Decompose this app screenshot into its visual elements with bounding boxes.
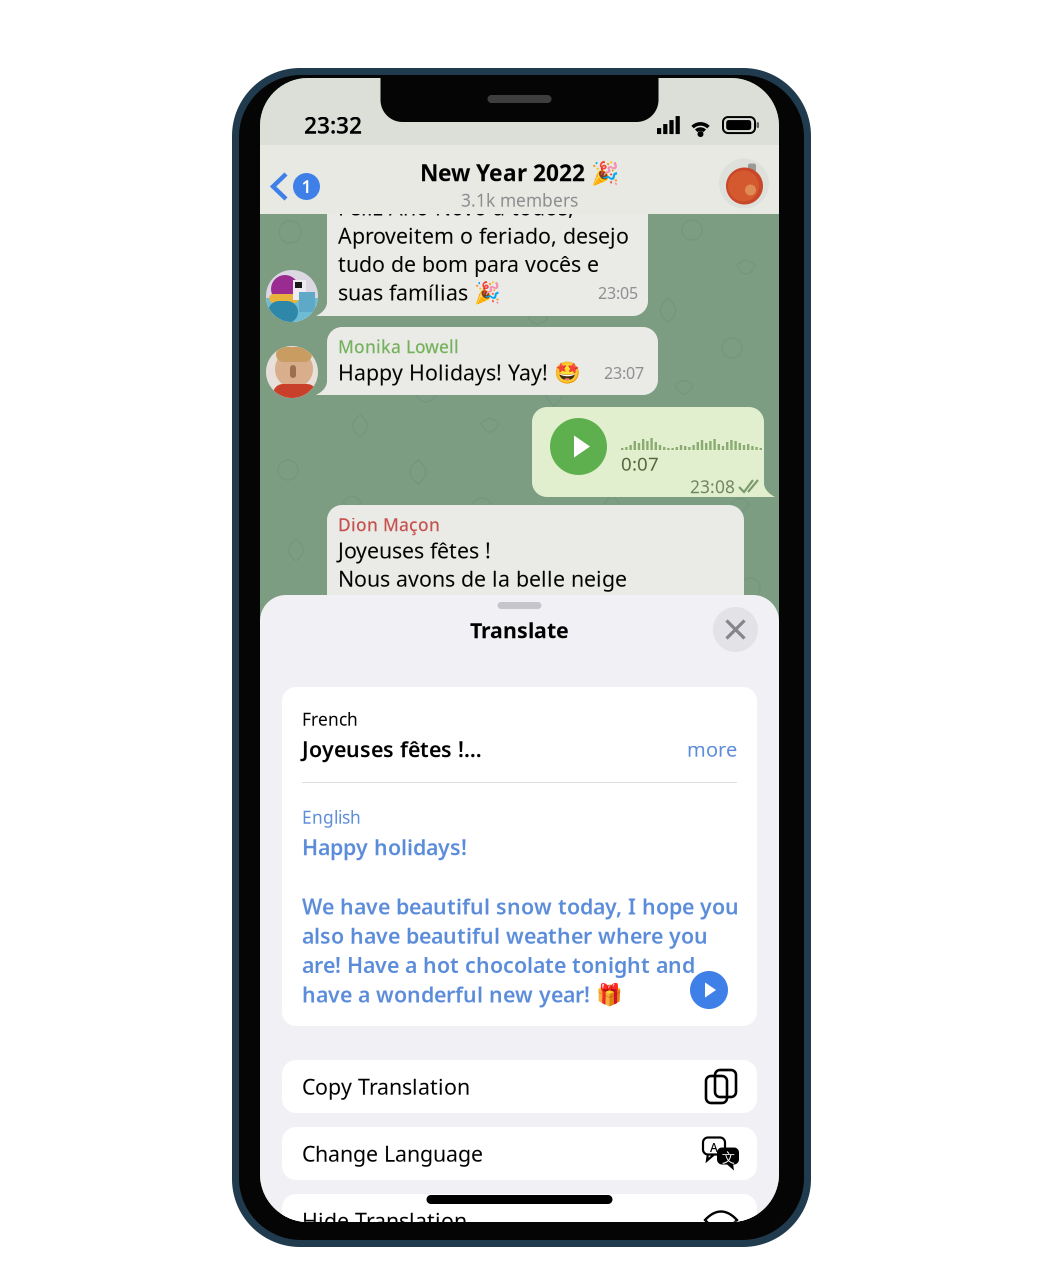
staticText: English	[302, 805, 361, 828]
staticText: Aproveitem o feriado, desejo	[338, 221, 629, 250]
staticText: tudo de bom para vocês e	[338, 250, 599, 278]
button[interactable]: Chat info	[715, 154, 765, 204]
staticText: 23:32	[304, 110, 362, 140]
staticText: 23:08	[690, 475, 735, 498]
staticText: Dion Maçon	[338, 513, 440, 536]
staticText: Feliz Ano Novo a todos,	[338, 193, 574, 221]
button[interactable]: Hide Translation	[282, 1194, 757, 1247]
button[interactable]: more	[687, 737, 737, 761]
staticText: 23:05	[598, 282, 638, 303]
staticText: suas famílias 🎉	[338, 278, 501, 306]
button[interactable]: Close	[713, 607, 758, 652]
staticText: Nous avons de la belle neige	[338, 564, 627, 593]
button[interactable]: Back	[266, 155, 324, 204]
staticText: Copy Translation	[302, 1072, 470, 1101]
staticText: 0:07	[621, 451, 659, 476]
staticText: We have beautiful snow today, I hope you	[302, 892, 739, 920]
staticText: French	[302, 707, 358, 730]
staticText: 3.1k members	[461, 188, 578, 211]
staticText: 文	[722, 1149, 735, 1166]
staticText: Happy holidays!	[302, 833, 467, 861]
staticText: Happy Holidays! Yay! 🤩	[338, 358, 581, 386]
staticText: Joyeuses fêtes !…	[302, 735, 482, 763]
staticText: 1	[301, 175, 311, 198]
staticText: more	[687, 736, 737, 762]
button[interactable]: Play translation	[690, 971, 728, 1009]
staticText: Change Language	[302, 1139, 483, 1168]
staticText: are! Have a hot chocolate tonight and	[302, 951, 695, 979]
staticText: Monika Lowell	[338, 335, 459, 358]
staticText: have a wonderful new year! 🎁	[302, 980, 623, 1008]
button[interactable]: Change Language	[282, 1127, 757, 1180]
staticText: Translate	[470, 616, 569, 644]
staticText: also have beautiful weather where you	[302, 921, 708, 950]
button[interactable]: Copy Translation	[282, 1060, 757, 1113]
staticText: New Year 2022 🎉	[420, 157, 619, 187]
staticText: 23:07	[604, 362, 644, 383]
staticText: Joyeuses fêtes !	[338, 536, 491, 564]
staticText: Hide Translation	[302, 1206, 467, 1235]
staticText: A	[710, 1139, 718, 1155]
